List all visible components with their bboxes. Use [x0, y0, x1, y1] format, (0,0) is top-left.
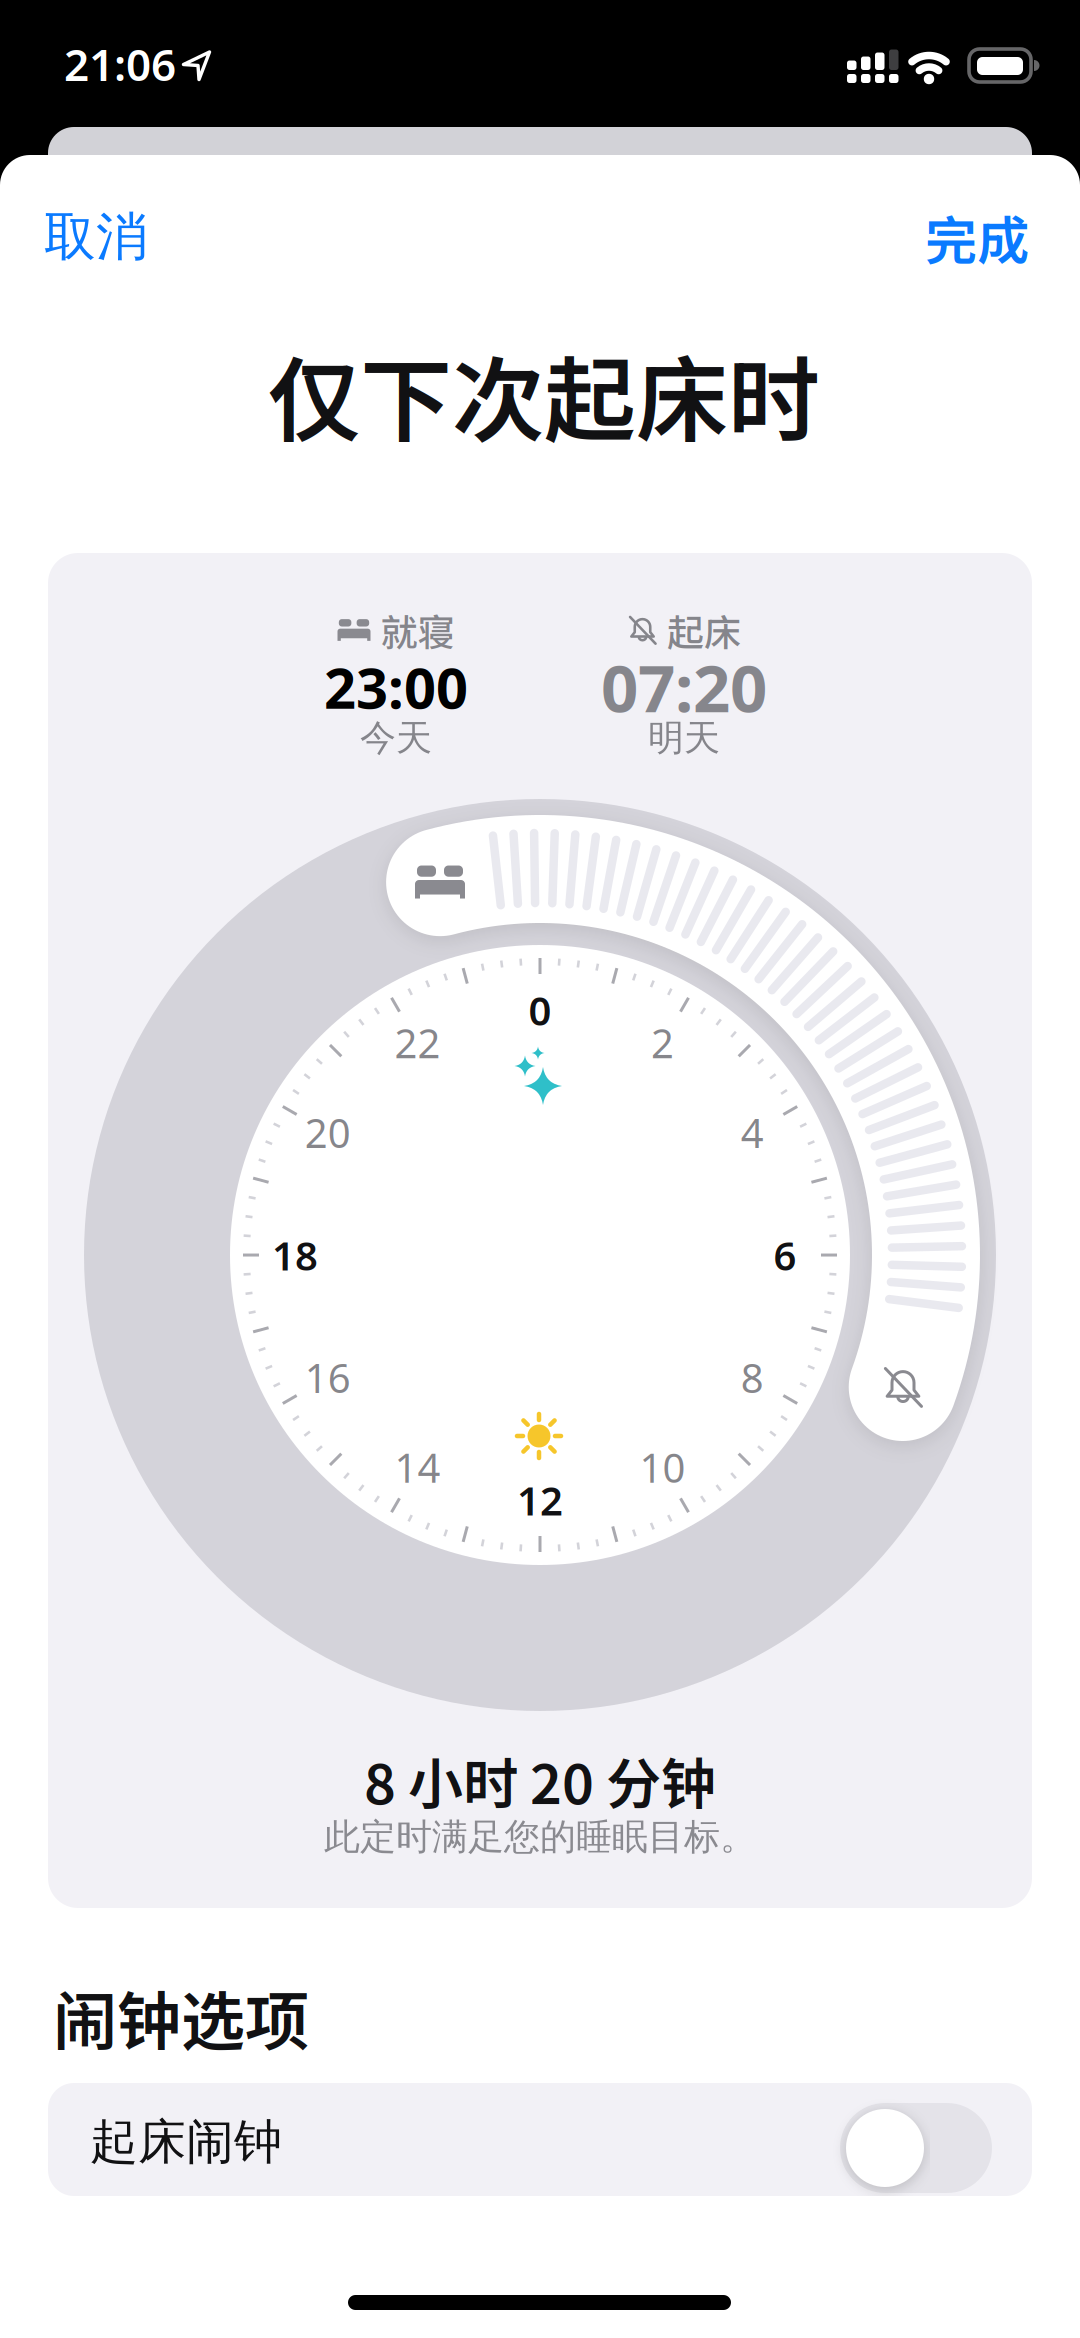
staticText: 23:00 [324, 650, 468, 724]
staticText: 14 [394, 1441, 440, 1494]
staticText: 2 [651, 1016, 674, 1069]
staticText: 18 [272, 1228, 318, 1281]
staticText: 就寝 [380, 603, 454, 657]
button[interactable]: 起床闹钟 [840, 2103, 992, 2193]
button[interactable]: 取消 [44, 205, 148, 269]
staticText: 6 [773, 1228, 796, 1281]
button[interactable]: 就寝时间 [415, 865, 465, 898]
staticText: 07:20 [601, 644, 767, 730]
staticText: 起床 [667, 603, 741, 657]
staticText: 12 [517, 1473, 563, 1526]
staticText: 21:06 [64, 35, 176, 93]
staticText: 取消 [44, 205, 148, 269]
staticText: 0 [528, 983, 551, 1036]
staticText: 20 [305, 1106, 351, 1159]
staticText: 8 [741, 1351, 764, 1404]
staticText: 明天 [648, 716, 720, 760]
staticText: 4 [741, 1106, 764, 1159]
staticText: 仅下次起床时 [268, 327, 820, 461]
staticText: 闹钟选项 [53, 1971, 309, 2063]
staticText: 10 [639, 1441, 685, 1494]
staticText: 22 [394, 1016, 440, 1069]
staticText: 完成 [925, 199, 1029, 275]
staticText: 起床闹钟 [90, 2112, 282, 2171]
staticText: 8 小时 20 分钟 [364, 1740, 716, 1820]
staticText: 此定时满足您的睡眠目标。 [324, 1815, 756, 1859]
button[interactable]: 起床时间 [881, 1365, 925, 1409]
staticText: 16 [305, 1351, 351, 1404]
staticText: 今天 [360, 716, 432, 760]
button[interactable]: 完成 [925, 199, 1029, 275]
